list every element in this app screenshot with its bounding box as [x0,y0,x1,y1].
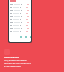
button[interactable]: Status [9,0,31,42]
staticText: Fast, intuitive and flexible reporting f… [4,59,32,68]
button[interactable]: Status [30,36,31,38]
staticText: CORPORATE [4,55,19,58]
